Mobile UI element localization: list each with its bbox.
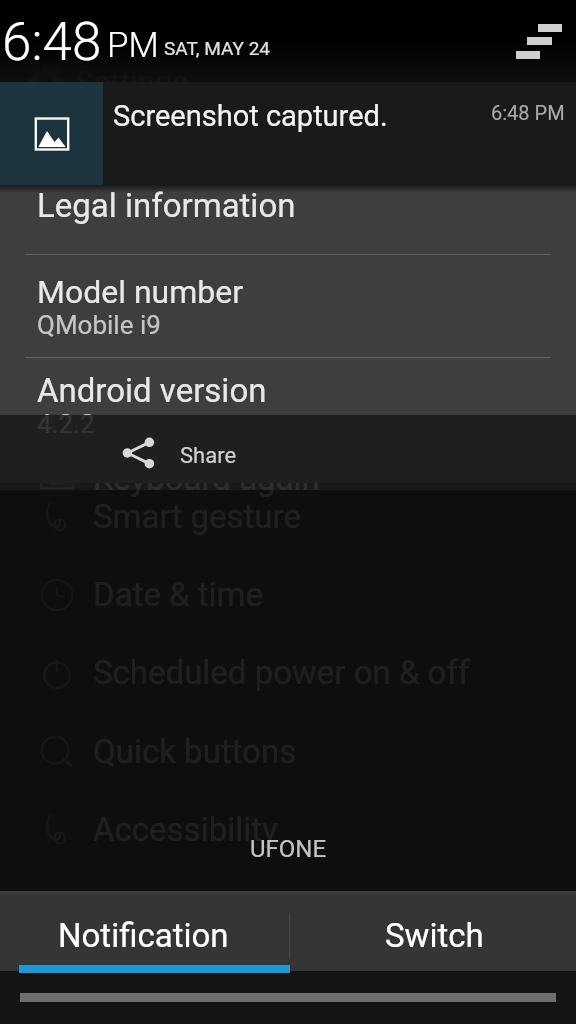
button[interactable]: Model number	[0, 255, 576, 357]
staticText: Share	[180, 443, 237, 469]
button[interactable]: Keyboard again	[0, 453, 576, 505]
staticText: Model number	[37, 273, 244, 311]
staticText: Accessibility	[93, 810, 278, 849]
staticText: Android version	[37, 371, 267, 410]
button[interactable]: Date & time	[0, 569, 576, 621]
staticText: Keyboard again	[93, 459, 320, 498]
staticText: Date & time	[93, 575, 264, 614]
button[interactable]: Share	[0, 415, 576, 489]
staticText: Settings	[75, 64, 189, 100]
staticText: Quick buttons	[93, 732, 297, 771]
button[interactable]: Scheduled power on & off	[0, 647, 576, 699]
button[interactable]: Legal information	[0, 185, 576, 254]
staticText: QMobile i9	[37, 310, 161, 340]
staticText: PM	[107, 25, 159, 66]
staticText: 6:48 PM	[491, 101, 565, 124]
button[interactable]: Notification	[0, 893, 289, 971]
staticText: 6:48	[2, 11, 102, 73]
button[interactable]: Quick settings	[504, 9, 576, 75]
staticText: SAT, MAY 24	[164, 37, 271, 59]
staticText: Scheduled power on & off	[93, 653, 470, 692]
staticText: Screenshot captured.	[113, 99, 388, 133]
button[interactable]: Quick buttons	[0, 726, 576, 778]
staticText: 4.2.2	[37, 409, 95, 439]
staticText: UFONE	[250, 835, 327, 863]
button[interactable]: Screenshot captured.	[0, 82, 576, 185]
button[interactable]: Smart gesture	[0, 491, 576, 543]
staticText: Legal information	[37, 186, 296, 225]
staticText: Notification	[58, 916, 229, 955]
staticText: Smart gesture	[93, 497, 301, 536]
button[interactable]: Switch	[290, 893, 576, 971]
button[interactable]: Android version	[0, 358, 576, 460]
staticText: Switch	[385, 916, 484, 955]
button[interactable]: Accessibility	[0, 804, 576, 856]
